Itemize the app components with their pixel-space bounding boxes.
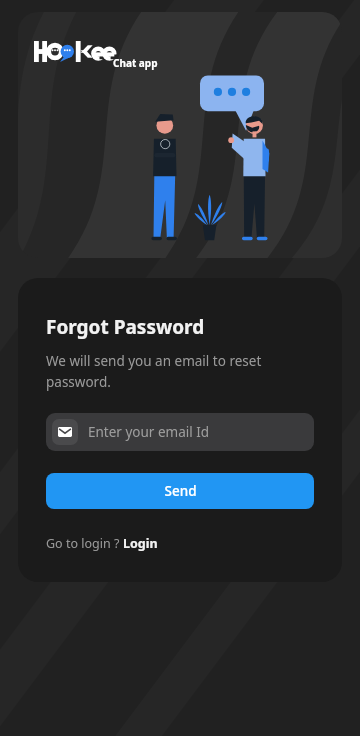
staticText: We will send you an email to reset passw… (46, 352, 314, 391)
staticText: Chat app (113, 56, 158, 70)
button[interactable]: Enter your email Id (46, 413, 314, 451)
button[interactable]: Go to login ? (46, 535, 158, 552)
button[interactable]: Send (46, 473, 314, 509)
staticText: Forgot Password (46, 314, 205, 340)
staticText: Go to login ? (46, 535, 123, 552)
staticText: Send (164, 482, 197, 500)
staticText: Enter your email Id (88, 423, 210, 441)
staticText: Login (123, 535, 158, 552)
